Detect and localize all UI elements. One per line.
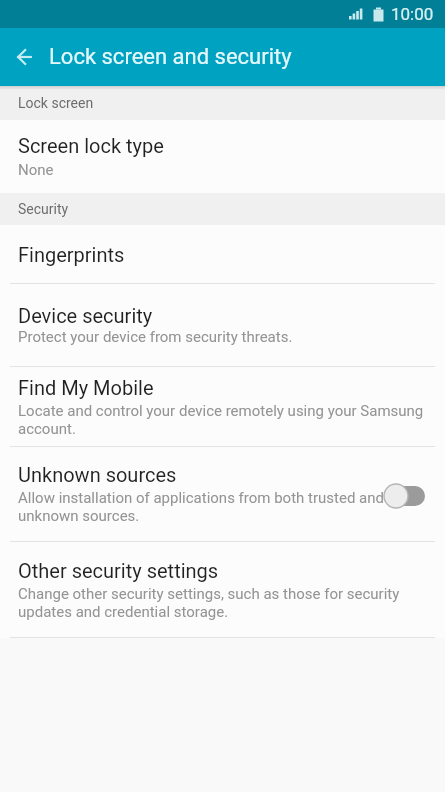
staticText: Screen lock type: [18, 134, 164, 157]
staticText: Other security settings: [18, 559, 219, 582]
staticText: Security: [18, 201, 69, 217]
staticText: 10:00: [391, 4, 434, 24]
staticText: Lock screen: [18, 95, 94, 111]
button[interactable]: Other security settings: [0, 542, 445, 637]
staticText: Lock screen and security: [49, 44, 292, 70]
staticText: Unknown sources: [18, 463, 177, 486]
button[interactable]: Find My Mobile: [0, 367, 445, 446]
button[interactable]: Unknown sources: [0, 447, 445, 541]
staticText: Protect your device from security threat…: [18, 328, 293, 346]
staticText: Change other security settings, such as …: [18, 585, 400, 621]
staticText: Device security: [18, 304, 153, 327]
button[interactable]: Lock screen and security: [0, 28, 445, 86]
staticText: Fingerprints: [18, 243, 125, 266]
staticText: Allow installation of applications from …: [18, 489, 384, 525]
staticText: Find My Mobile: [18, 376, 154, 399]
button[interactable]: Screen lock type: [0, 120, 445, 193]
button[interactable]: Device security: [0, 284, 445, 366]
button[interactable]: Fingerprints: [0, 225, 445, 283]
staticText: Locate and control your device remotely …: [18, 402, 424, 438]
staticText: None: [18, 161, 54, 179]
